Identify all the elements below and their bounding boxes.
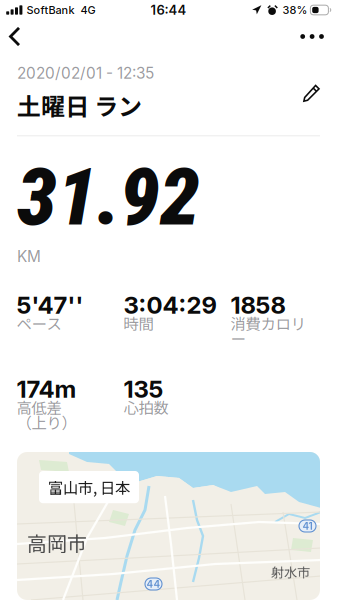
staticText: ー [230, 327, 245, 349]
staticText: 38% [282, 3, 307, 17]
staticText: 174m [16, 375, 76, 404]
button[interactable]: Back [0, 21, 36, 51]
staticText: SoftBank [27, 3, 75, 17]
button[interactable]: Edit activity [298, 79, 325, 107]
staticText: 4G [81, 3, 96, 17]
staticText: ペース [16, 312, 61, 334]
staticText: 5'47'' [16, 291, 83, 320]
staticText: 31.92 [17, 150, 200, 244]
staticText: 3:04:29 [123, 291, 216, 320]
staticText: 富山市, 日本 [48, 476, 130, 498]
staticText: 消費カロリ [230, 312, 305, 334]
staticText: 高低差 [16, 396, 61, 418]
staticText: 土曜日 ラン [17, 88, 142, 122]
staticText: 心拍数 [123, 396, 168, 418]
staticText: 44 [146, 578, 160, 590]
staticText: 時間 [123, 312, 153, 334]
staticText: 2020/02/01 - 12:35 [17, 64, 154, 83]
staticText: 1858 [230, 291, 285, 320]
staticText: 高岡市 [27, 528, 87, 557]
staticText: （上り） [16, 411, 76, 433]
staticText: 射水市 [271, 562, 310, 581]
staticText: 16:44 [150, 2, 186, 18]
button[interactable]: More options [287, 23, 337, 50]
staticText: KM [17, 247, 41, 266]
staticText: 41 [302, 520, 312, 532]
staticText: 135 [123, 375, 163, 404]
